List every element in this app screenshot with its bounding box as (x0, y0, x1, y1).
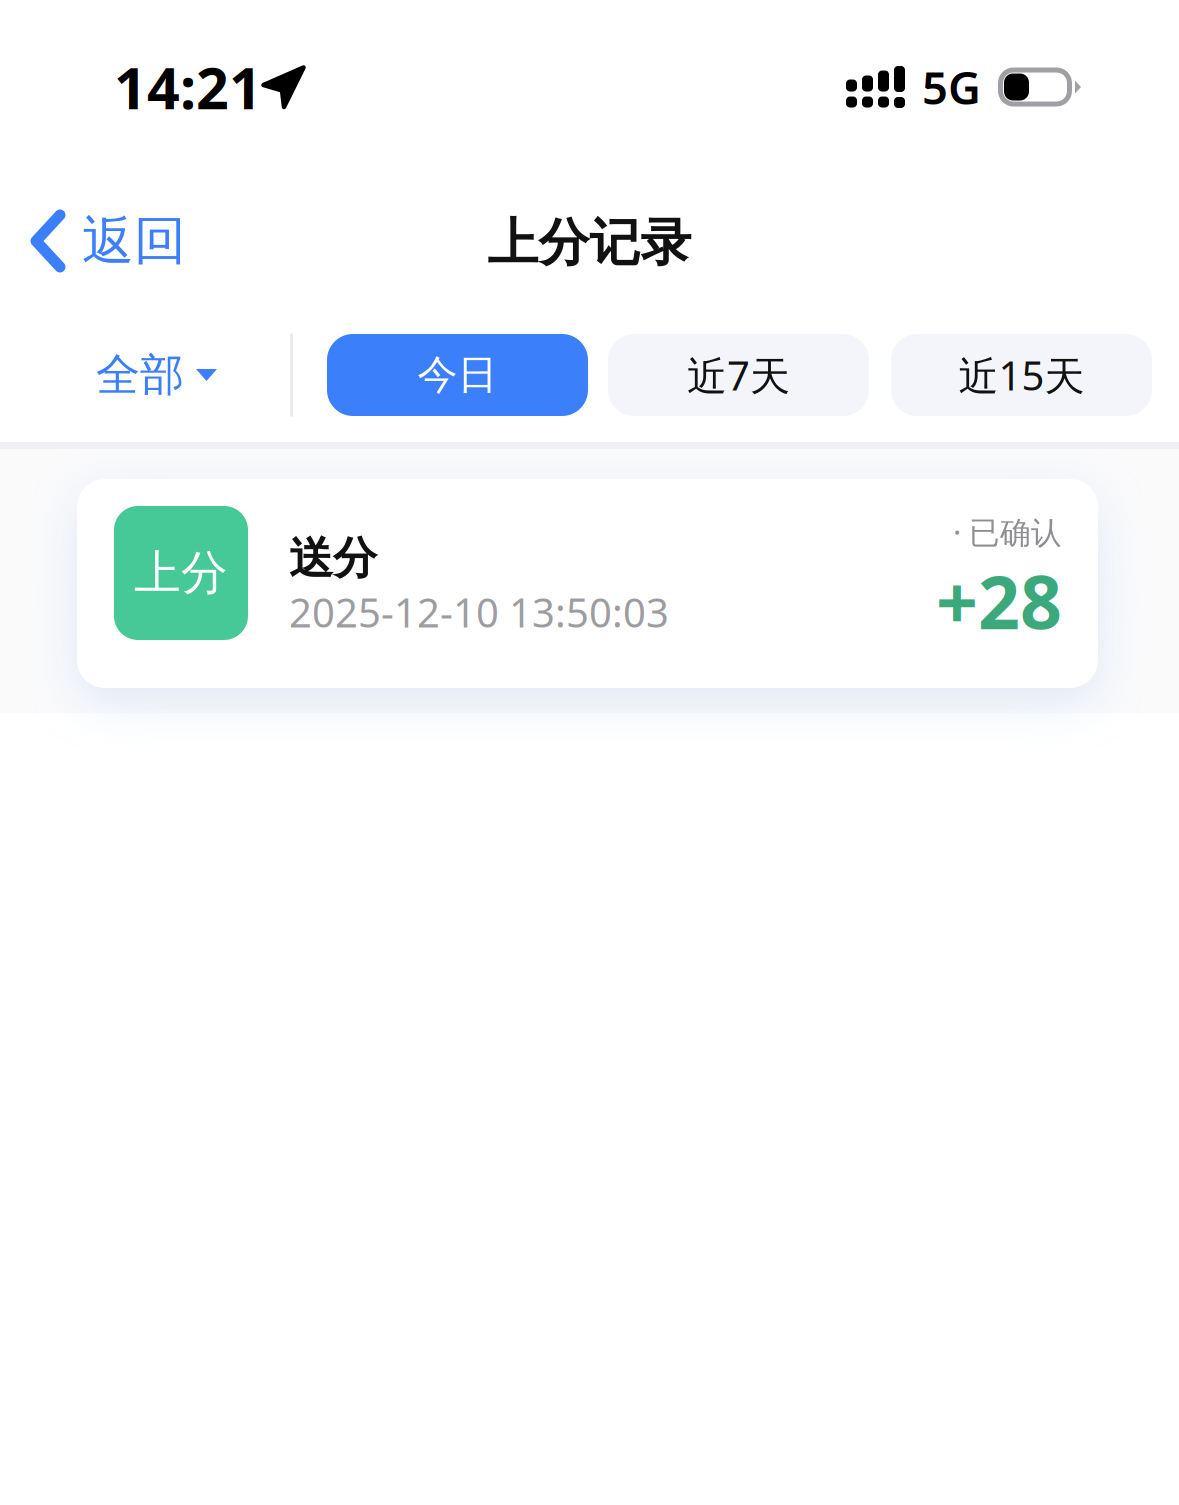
button[interactable]: 上分 (0, 479, 1179, 688)
staticText: +28 (936, 552, 1062, 650)
staticText: · 已确认 (953, 511, 1062, 552)
button[interactable]: 近15天 (891, 334, 1152, 416)
staticText: 上分记录 (487, 212, 691, 274)
staticText: 上分 (134, 544, 228, 602)
button[interactable]: 返回 (0, 203, 420, 279)
staticText: 今日 (417, 350, 497, 399)
staticText: 近15天 (958, 348, 1084, 401)
staticText: 送分 (289, 531, 377, 585)
staticText: 2025-12-10 13:50:03 (289, 585, 669, 638)
button[interactable]: 全部 (0, 309, 290, 441)
staticText: 5G (922, 57, 981, 117)
staticText: 14:21 (114, 49, 262, 125)
button[interactable]: 今日 (327, 334, 588, 416)
staticText: 返回 (82, 209, 186, 273)
staticText: 近7天 (687, 348, 790, 401)
staticText: 全部 (96, 348, 184, 402)
button[interactable]: 近7天 (608, 334, 869, 416)
